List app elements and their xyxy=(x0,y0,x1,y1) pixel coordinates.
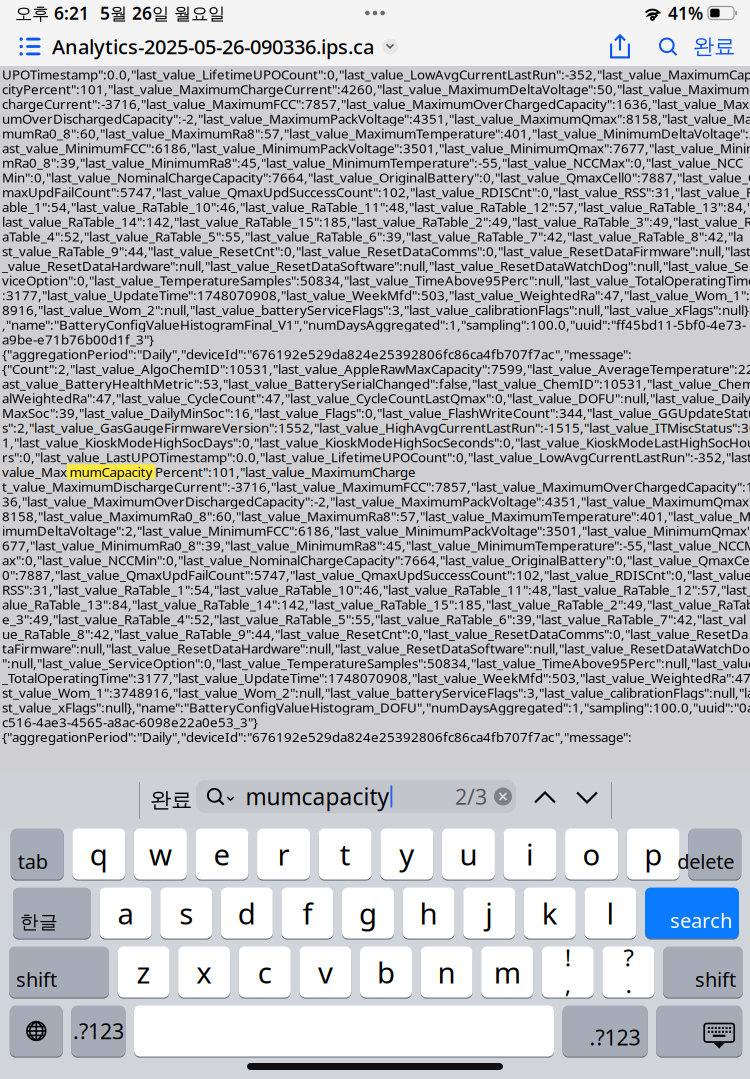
staticText: mumCapacity xyxy=(69,463,152,481)
button[interactable]: Dismiss keyboard xyxy=(656,1005,742,1056)
staticText: shift xyxy=(16,966,57,992)
staticText: q xyxy=(90,834,108,873)
button[interactable]: 완료 xyxy=(146,780,196,820)
button[interactable]: b xyxy=(360,946,412,997)
button[interactable]: z xyxy=(118,946,170,997)
staticText: Min":0,"last_value_NominalChargeCapacity… xyxy=(2,168,750,186)
button[interactable]: u xyxy=(442,828,495,879)
staticText: c516-4ae3-4565-a8ac-6098e22a0e53_3"} xyxy=(2,713,258,731)
staticText: z xyxy=(137,952,151,991)
button[interactable]: ! xyxy=(542,946,594,997)
staticText: y xyxy=(399,834,414,873)
button[interactable]: 완료 xyxy=(692,26,736,67)
staticText: n xyxy=(438,952,456,991)
staticText: x xyxy=(196,952,212,991)
staticText: v xyxy=(318,952,333,991)
staticText: 2/3 xyxy=(455,782,487,811)
staticText: 41% xyxy=(668,1,703,24)
button[interactable]: x xyxy=(178,946,230,997)
staticText: c xyxy=(258,952,272,991)
staticText: 8158,"last_value_MaximumRa0_8":60,"last_… xyxy=(2,507,750,525)
staticText: :3177,"last_value_UpdateTime":1748070908… xyxy=(2,286,750,304)
staticText: e_3":49,"last_value_RaTable_4":52,"last_… xyxy=(2,610,746,628)
button[interactable]: c xyxy=(239,946,291,997)
button[interactable]: f xyxy=(281,887,333,938)
staticText: d xyxy=(238,893,256,932)
button[interactable]: n xyxy=(421,946,473,997)
staticText: taFirmware":null,"last_value_ResetDataHa… xyxy=(2,640,750,657)
button[interactable]: shift xyxy=(9,946,109,997)
staticText: search xyxy=(670,907,732,933)
button[interactable]: m xyxy=(481,946,533,997)
staticText: mRa0_8":39,"last_value_MinimumRa8":45,"l… xyxy=(2,154,743,171)
button[interactable]: g xyxy=(342,887,394,938)
button[interactable]: a xyxy=(100,887,152,938)
button[interactable]: delete xyxy=(688,828,741,879)
staticText: RSS":31,"last_value_RaTable_1":54,"last_… xyxy=(2,581,750,598)
button[interactable]: q xyxy=(72,828,125,879)
staticText: w xyxy=(149,834,172,873)
staticText: 오후 6:21 xyxy=(15,1,89,24)
staticText: h xyxy=(420,893,438,932)
button[interactable]: .?123 xyxy=(563,1005,648,1056)
button[interactable]: .?123 xyxy=(71,1005,125,1056)
button[interactable]: h xyxy=(403,887,455,938)
staticText: p xyxy=(644,834,662,873)
button[interactable]: Share xyxy=(596,26,644,67)
staticText: u xyxy=(459,834,477,873)
staticText: r xyxy=(278,834,290,873)
button[interactable]: l xyxy=(584,887,636,938)
button[interactable]: 한글 xyxy=(13,887,91,938)
button[interactable]: Previous result xyxy=(522,778,568,818)
button[interactable]: Sidebar xyxy=(19,26,41,67)
staticText: {"Count":2,"last_value_AlgoChemID":10531… xyxy=(2,360,750,378)
staticText: imumDeltaVoltage":2,"last_value_MinimumF… xyxy=(2,522,750,539)
staticText: UPOTimestamp":0.0,"last_value_LifetimeUP… xyxy=(2,65,750,83)
staticText: alue_RaTable_13":84,"last_value_RaTable_… xyxy=(2,595,750,613)
staticText: umOverDischargedCapacity":-2,"last_value… xyxy=(2,110,750,127)
staticText: alWeightedRa":47,"last_value_CycleCount"… xyxy=(2,389,750,407)
button[interactable]: v xyxy=(299,946,351,997)
staticText: b xyxy=(377,952,395,991)
staticText: aTable_4":52,"last_value_RaTable_5":55,"… xyxy=(2,227,743,245)
button[interactable]: Next keyboard xyxy=(10,1005,63,1056)
staticText: tab xyxy=(18,848,48,874)
staticText: s xyxy=(179,893,193,932)
staticText: 677,"last_value_MinimumRa0_8":39,"last_v… xyxy=(2,536,750,554)
staticText: 0":7887,"last_value_QmaxUpdFailCount":57… xyxy=(2,566,750,584)
button[interactable]: Next result xyxy=(564,778,610,818)
button[interactable]: Search xyxy=(644,26,692,67)
button[interactable]: o xyxy=(565,828,618,879)
staticText: mumcapacity xyxy=(245,781,389,811)
staticText: ue_RaTable_8":42,"last_value_RaTable_9":… xyxy=(2,625,748,643)
staticText: 한글 xyxy=(20,911,58,933)
button[interactable]: k xyxy=(524,887,576,938)
button[interactable]: t xyxy=(319,828,372,879)
staticText: shift xyxy=(695,966,736,992)
staticText: . xyxy=(625,968,631,1000)
button[interactable]: s xyxy=(160,887,212,938)
button[interactable]: y xyxy=(380,828,433,879)
staticText: cityPercent":101,"last_value_MaximumChar… xyxy=(2,80,750,98)
button[interactable]: w xyxy=(134,828,187,879)
staticText: st_value_Wom_1":3748916,"last_value_Wom_… xyxy=(2,684,750,701)
staticText: ax":0,"last_value_NCCMin":0,"last_value_… xyxy=(2,551,750,569)
button[interactable]: i xyxy=(503,828,556,879)
button[interactable]: search xyxy=(645,887,739,938)
button[interactable]: tab xyxy=(11,828,64,879)
staticText: 완료 xyxy=(150,787,192,813)
staticText: l xyxy=(606,893,614,932)
button[interactable]: Analytics-2025-05-26-090336.ips.ca xyxy=(41,26,398,67)
button[interactable]: e xyxy=(195,828,248,879)
staticText: ":null,"last_value_ServiceOption":0,"las… xyxy=(2,654,750,672)
button[interactable]: d xyxy=(221,887,273,938)
staticText: 8916,"last_value_Wom_2":null,"last_value… xyxy=(2,301,749,319)
button[interactable]: ? xyxy=(602,946,654,997)
button[interactable]: p xyxy=(627,828,680,879)
staticText: _value_ResetDataHardware":null,"last_val… xyxy=(2,257,750,275)
button[interactable]: shift xyxy=(663,946,743,997)
staticText: f xyxy=(302,893,312,932)
button[interactable]: r xyxy=(257,828,310,879)
button[interactable]: j xyxy=(463,887,515,938)
